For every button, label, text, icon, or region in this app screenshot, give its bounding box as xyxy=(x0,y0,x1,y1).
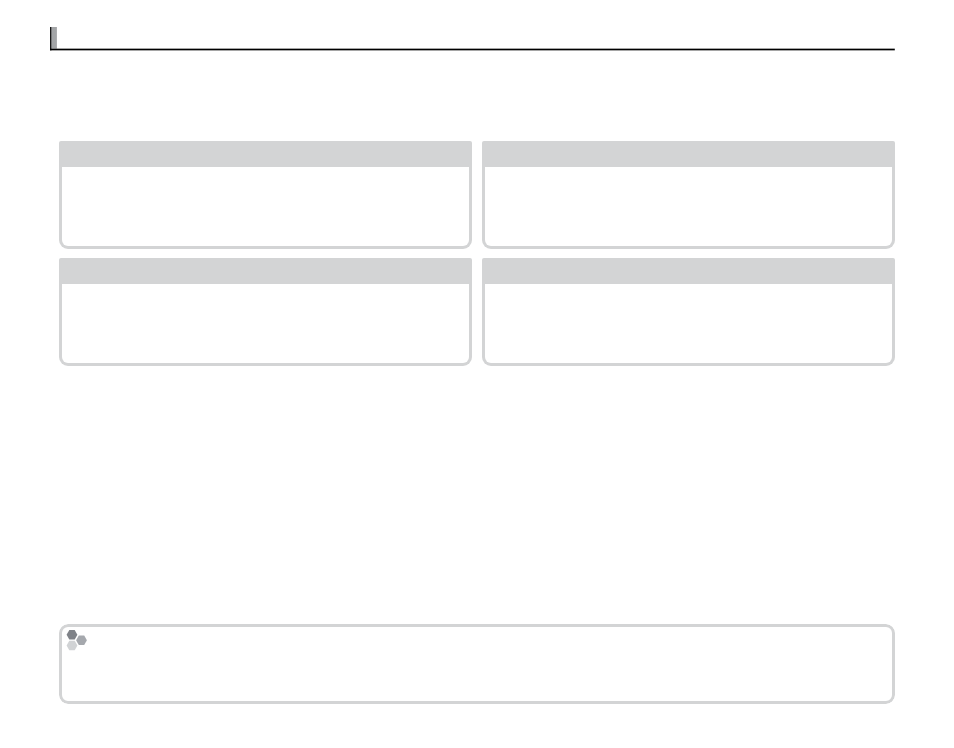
other: App logo xyxy=(64,627,90,653)
button[interactable]: Panel 1 xyxy=(59,141,472,249)
button[interactable]: Footer panel xyxy=(59,624,895,704)
button[interactable]: Panel 4 xyxy=(482,258,895,366)
other: Usage chart xyxy=(40,16,910,60)
button[interactable]: Panel 2 xyxy=(482,141,895,249)
button[interactable]: Panel 3 xyxy=(59,258,472,366)
